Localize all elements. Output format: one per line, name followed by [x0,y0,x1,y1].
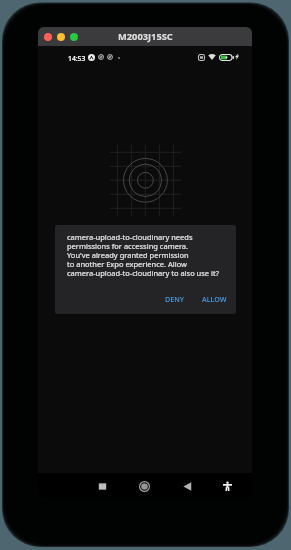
staticText: DENY [165,294,185,304]
button[interactable]: Accessibility [214,473,240,499]
staticText: 14:53 [68,54,86,63]
button[interactable]: Home [131,473,157,499]
button[interactable]: Back [174,473,200,499]
button[interactable]: DENY [161,292,189,306]
button[interactable]: ALLOW [198,292,231,306]
staticText: camera-upload-to-cloudinary needs permis… [67,232,219,279]
button[interactable]: Recents [89,473,115,499]
staticText: M2003J15SC [118,30,173,43]
staticText: ALLOW [202,294,227,304]
